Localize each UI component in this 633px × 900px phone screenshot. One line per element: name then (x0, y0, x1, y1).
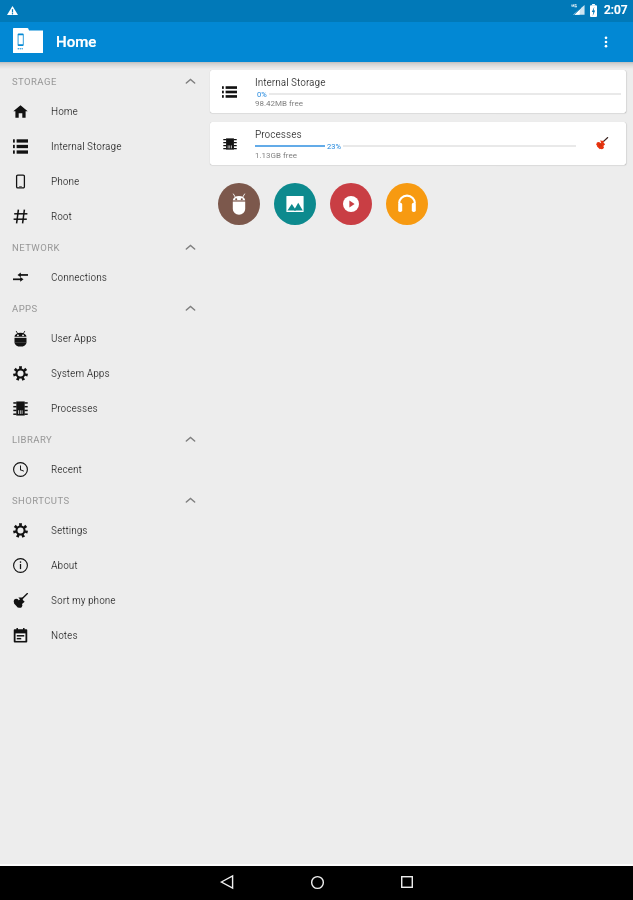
staticText: 23% (327, 142, 341, 150)
button[interactable]: Processes (210, 122, 626, 165)
button[interactable]: APPS (0, 295, 205, 321)
button[interactable]: System Apps (0, 356, 205, 391)
staticText: Settings (51, 525, 88, 537)
button[interactable]: Images (274, 183, 316, 225)
button[interactable]: Sort my phone (0, 583, 205, 618)
staticText: User Apps (51, 333, 97, 345)
staticText: NETWORK (12, 242, 60, 253)
staticText: Internal Storage (51, 141, 122, 153)
staticText: Internal Storage (255, 77, 326, 89)
button[interactable]: Audio (386, 183, 428, 225)
staticText: Processes (51, 403, 98, 415)
staticText: 2:07 (604, 3, 628, 17)
button[interactable]: LIBRARY (0, 426, 205, 452)
staticText: APPS (12, 303, 38, 314)
button[interactable]: Clean (576, 122, 626, 165)
staticText: Root (51, 211, 72, 223)
button[interactable]: User Apps (0, 321, 205, 356)
button[interactable]: Back (182, 864, 272, 900)
staticText: LIBRARY (12, 434, 53, 445)
button[interactable]: About (0, 548, 205, 583)
staticText: System Apps (51, 368, 110, 380)
button[interactable]: Connections (0, 260, 205, 295)
button[interactable]: Notes (0, 618, 205, 653)
button[interactable]: SHORTCUTS (0, 487, 205, 513)
staticText: Home (51, 106, 78, 118)
staticText: 98.42MB free (255, 99, 303, 108)
button[interactable]: Internal Storage (210, 70, 626, 113)
staticText: Recent (51, 464, 82, 476)
button[interactable]: NETWORK (0, 234, 205, 260)
staticText: 0% (257, 90, 267, 98)
button[interactable]: Home (0, 94, 205, 129)
button[interactable]: Processes (0, 391, 205, 426)
staticText: Processes (255, 129, 302, 141)
staticText: Sort my phone (51, 595, 116, 607)
button[interactable]: Phone (0, 164, 205, 199)
button[interactable]: Recents (362, 864, 452, 900)
button[interactable]: Home (272, 864, 362, 900)
button[interactable]: Root (0, 199, 205, 234)
button[interactable]: STORAGE (0, 68, 205, 94)
button[interactable]: Settings (0, 513, 205, 548)
staticText: Phone (51, 176, 80, 188)
staticText: Home (56, 33, 97, 51)
staticText: 1.13GB free (255, 151, 297, 160)
button[interactable]: Internal Storage (0, 129, 205, 164)
staticText: Connections (51, 272, 107, 284)
staticText: SHORTCUTS (12, 495, 70, 506)
button[interactable]: Open navigation (11, 23, 45, 57)
button[interactable]: User apps (218, 183, 260, 225)
staticText: STORAGE (12, 76, 57, 87)
button[interactable]: Videos (330, 183, 372, 225)
button[interactable]: More options (586, 22, 626, 62)
staticText: Notes (51, 630, 78, 642)
button[interactable]: Recent (0, 452, 205, 487)
staticText: About (51, 560, 78, 572)
